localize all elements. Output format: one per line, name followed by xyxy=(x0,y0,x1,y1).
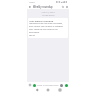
button[interactable]: More options xyxy=(65,5,68,8)
button[interactable]: Attach file xyxy=(60,84,63,87)
staticText: See all xyxy=(29,34,36,37)
button[interactable]: Add xyxy=(28,83,32,87)
staticText: Highlights from the team this week, plus… xyxy=(29,22,67,34)
button[interactable]: Search xyxy=(61,5,64,8)
button[interactable]: Back xyxy=(35,88,39,92)
staticText: 10:24 xyxy=(29,1,35,4)
button[interactable]: Home xyxy=(46,88,50,92)
button[interactable]: Your weekly roundup xyxy=(28,18,68,38)
button[interactable]: Back xyxy=(28,5,32,9)
button[interactable]: Recent apps xyxy=(58,88,62,92)
button[interactable]: Send xyxy=(65,84,68,87)
staticText: Write a message here xyxy=(37,84,59,87)
staticText: Weekly roundup xyxy=(33,5,53,8)
button[interactable]: Camera xyxy=(33,84,36,87)
staticText: Aug 14, 2024 14 new items xyxy=(41,11,55,16)
staticText: Your weekly roundup xyxy=(29,19,54,22)
